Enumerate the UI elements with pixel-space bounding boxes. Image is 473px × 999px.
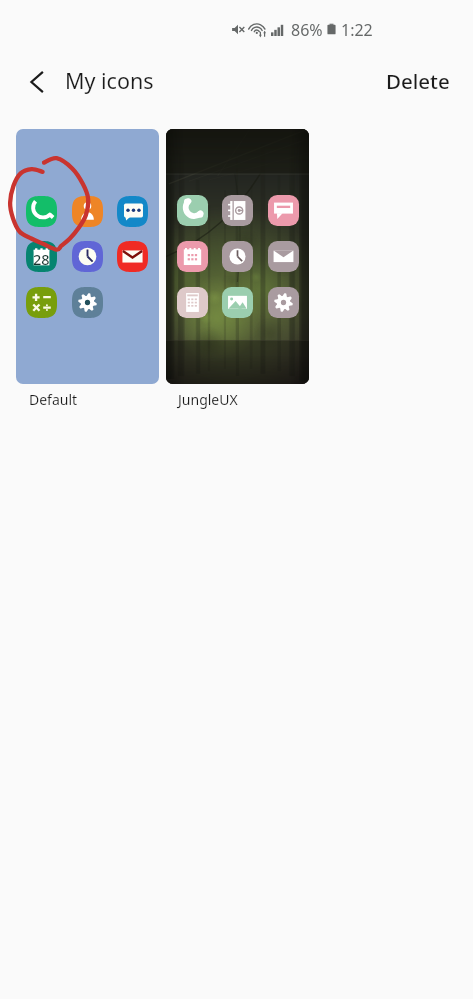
button[interactable]: Delete — [372, 56, 464, 106]
staticText: 28 — [33, 249, 50, 269]
button[interactable]: JungleUX theme — [166, 129, 309, 384]
staticText: Delete — [386, 67, 450, 95]
button[interactable]: Navigate up — [13, 58, 61, 106]
button[interactable]: Default theme — [16, 129, 159, 384]
staticText: 86% — [291, 19, 323, 41]
staticText: Default — [29, 390, 78, 409]
staticText: My icons — [65, 66, 154, 95]
staticText: 1:22 — [341, 19, 373, 41]
staticText: JungleUX — [178, 390, 238, 409]
